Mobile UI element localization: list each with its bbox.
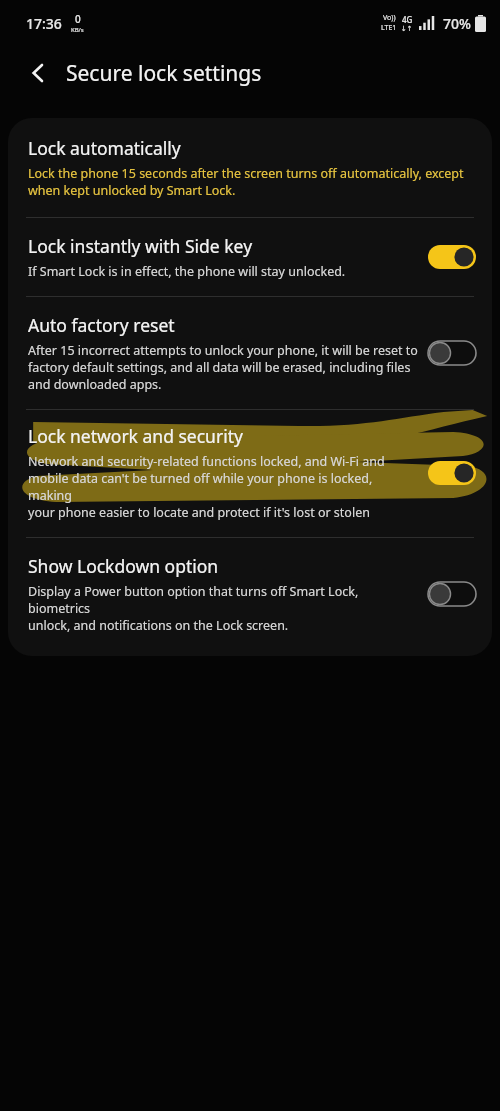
- staticText: After 15 incorrect attempts to unlock yo…: [28, 342, 418, 393]
- staticText: Lock instantly with Side key: [28, 234, 253, 258]
- button[interactable]: Lock automatically: [8, 118, 492, 217]
- staticText: Network and security-related functions l…: [28, 453, 418, 521]
- staticText: Lock network and security: [28, 424, 243, 448]
- button[interactable]: Off: [426, 338, 478, 368]
- staticText: 70%: [443, 14, 471, 33]
- staticText: 0: [75, 12, 81, 26]
- button[interactable]: Show Lockdown option: [8, 538, 492, 656]
- staticText: Auto factory reset: [28, 313, 175, 337]
- staticText: Lock the phone 15 seconds after the scre…: [28, 165, 464, 199]
- staticText: 4G: [402, 14, 413, 25]
- staticText: 17:36: [26, 14, 62, 33]
- staticText: If Smart Lock is in effect, the phone wi…: [28, 263, 346, 280]
- button[interactable]: Lock instantly with Side key: [8, 218, 492, 296]
- button[interactable]: On: [426, 242, 478, 272]
- button[interactable]: On: [426, 458, 478, 488]
- staticText: Show Lockdown option: [28, 554, 219, 578]
- staticText: Lock automatically: [28, 136, 181, 160]
- staticText: Secure lock settings: [66, 59, 262, 88]
- staticText: Display a Power button option that turns…: [28, 583, 418, 634]
- staticText: LTE1: [381, 23, 397, 33]
- staticText: ↓↑: [401, 25, 413, 33]
- button[interactable]: Back: [16, 51, 60, 95]
- staticText: Vo)): [383, 13, 396, 23]
- button[interactable]: Auto factory reset: [8, 297, 492, 409]
- staticText: KB/s: [71, 26, 84, 34]
- button[interactable]: Off: [426, 579, 478, 609]
- button[interactable]: Lock network and security: [8, 410, 492, 537]
